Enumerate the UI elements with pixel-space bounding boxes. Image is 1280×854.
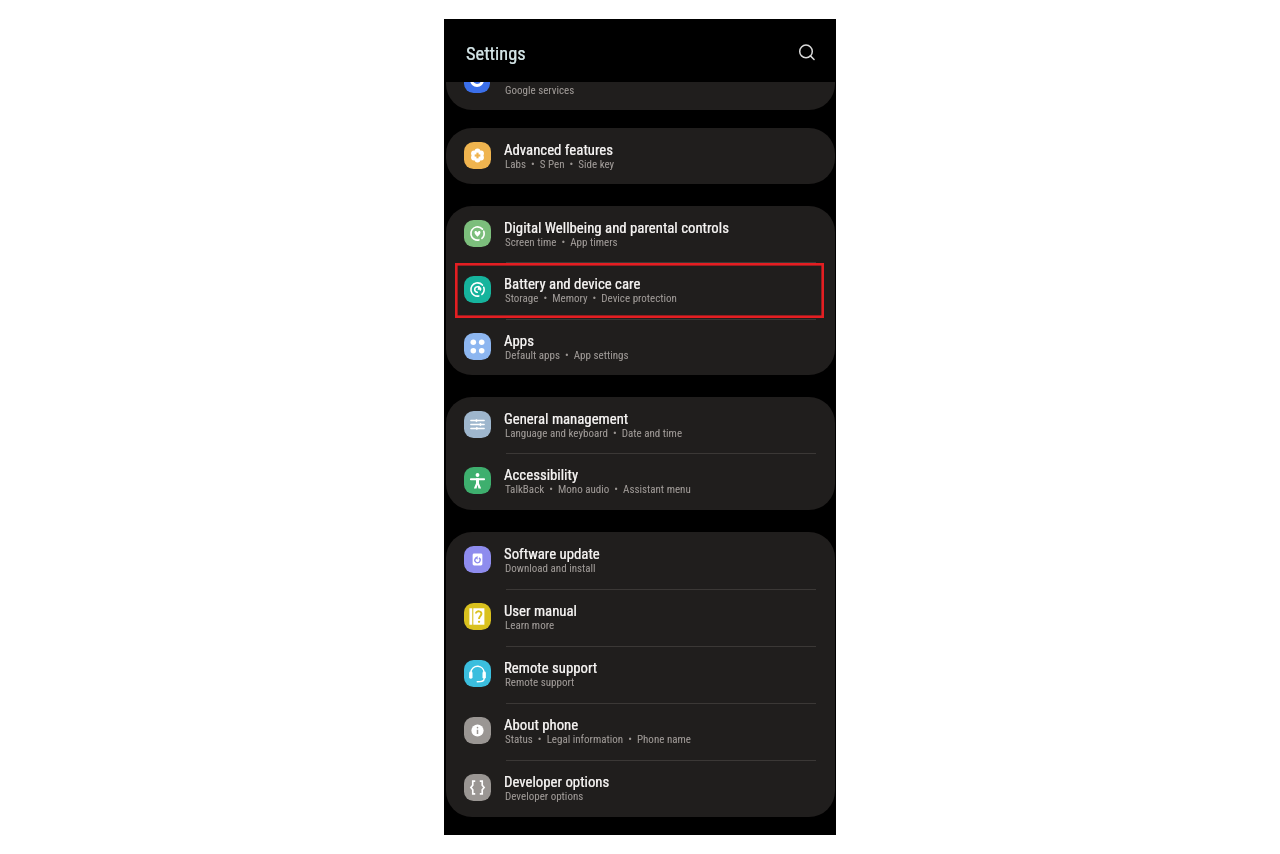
button[interactable]: Battery and device care — [446, 262, 835, 318]
staticText: Developer options — [505, 790, 584, 803]
staticText: Battery and device care — [504, 275, 641, 292]
button[interactable]: Accessibility — [446, 453, 835, 509]
staticText: Remote support — [504, 659, 598, 676]
button[interactable]: Developer options — [446, 760, 835, 817]
button[interactable]: About phone — [446, 703, 835, 760]
staticText: User manual — [504, 602, 577, 619]
staticText: General management — [504, 410, 629, 427]
staticText: Google services — [505, 84, 575, 97]
button[interactable]: Google services — [446, 82, 835, 110]
button[interactable]: Remote support — [446, 646, 835, 703]
staticText: Accessibility — [504, 466, 579, 483]
button[interactable]: Apps — [446, 319, 835, 375]
staticText: Software update — [504, 545, 600, 562]
button[interactable]: User manual — [446, 589, 835, 646]
staticText: Status • Legal information • Phone name — [505, 733, 691, 746]
staticText: TalkBack • Mono audio • Assistant menu — [505, 483, 691, 496]
button[interactable]: General management — [446, 397, 835, 453]
staticText: Download and install — [505, 562, 596, 575]
staticText: Learn more — [505, 619, 555, 632]
staticText: Screen time • App timers — [505, 236, 618, 249]
staticText: Developer options — [504, 773, 610, 790]
staticText: Storage • Memory • Device protection — [505, 292, 677, 305]
staticText: Labs • S Pen • Side key — [505, 158, 615, 171]
staticText: Remote support — [505, 676, 575, 689]
button[interactable]: Software update — [446, 532, 835, 589]
staticText: Digital Wellbeing and parental controls — [504, 219, 729, 236]
staticText: Language and keyboard • Date and time — [505, 427, 683, 440]
staticText: Settings — [466, 43, 526, 65]
staticText: Advanced features — [504, 141, 613, 158]
staticText: About phone — [504, 716, 579, 733]
button[interactable]: Digital Wellbeing and parental controls — [446, 206, 835, 262]
button[interactable]: Search — [789, 35, 825, 71]
staticText: Default apps • App settings — [505, 349, 629, 362]
staticText: Apps — [504, 332, 534, 349]
button[interactable]: Advanced features — [446, 128, 835, 184]
